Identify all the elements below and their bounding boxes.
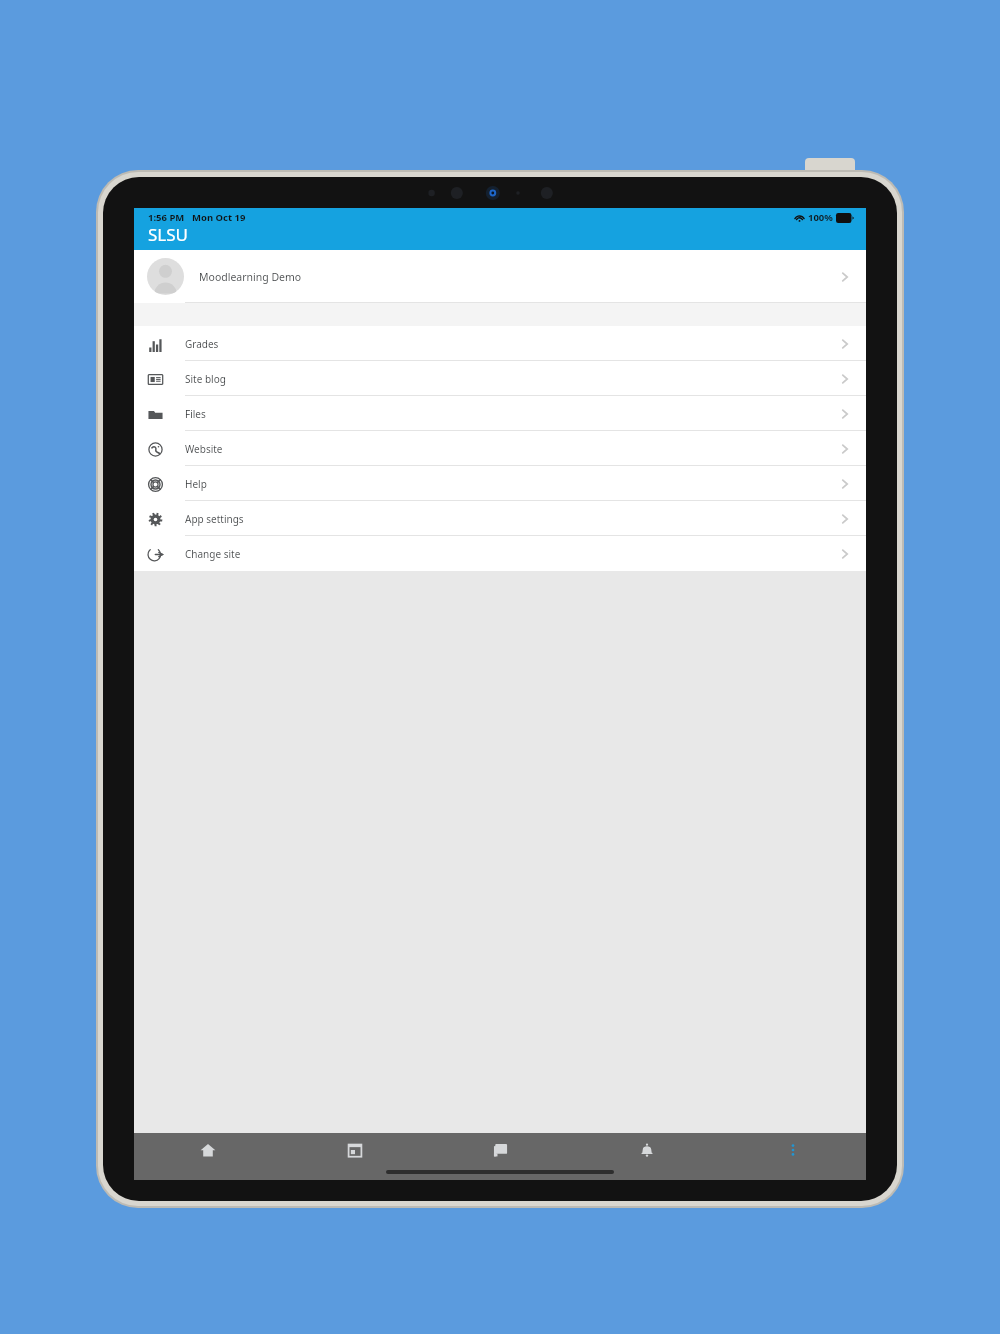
button[interactable]: Site blog	[134, 361, 866, 396]
button[interactable]: Change site	[134, 536, 866, 571]
button[interactable]: App settings	[134, 501, 866, 536]
button[interactable]: Help	[134, 466, 866, 501]
staticText: Moodlearning Demo	[199, 270, 302, 284]
button[interactable]: SLSU	[148, 223, 189, 246]
staticText: App settings	[185, 512, 244, 526]
staticText: Help	[185, 477, 207, 491]
button[interactable]: Grades	[134, 326, 866, 361]
button[interactable]: Notifications	[574, 1133, 720, 1167]
button[interactable]: Calendar	[281, 1133, 428, 1167]
button[interactable]: Home	[134, 1133, 281, 1167]
staticText: Website	[185, 442, 223, 456]
staticText: 100%	[808, 211, 833, 224]
button[interactable]: Dashboard	[428, 1133, 574, 1167]
button[interactable]: Moodlearning Demo	[134, 250, 866, 303]
staticText: Site blog	[185, 372, 226, 386]
button[interactable]: More options	[720, 1133, 866, 1167]
staticText: Change site	[185, 547, 241, 561]
staticText: SLSU	[148, 223, 189, 246]
button[interactable]: Files	[134, 396, 866, 431]
staticText: Grades	[185, 337, 219, 351]
button[interactable]: Website	[134, 431, 866, 466]
staticText: 1:56 PM	[148, 211, 185, 224]
staticText: Mon Oct 19	[192, 211, 246, 224]
staticText: Files	[185, 407, 206, 421]
